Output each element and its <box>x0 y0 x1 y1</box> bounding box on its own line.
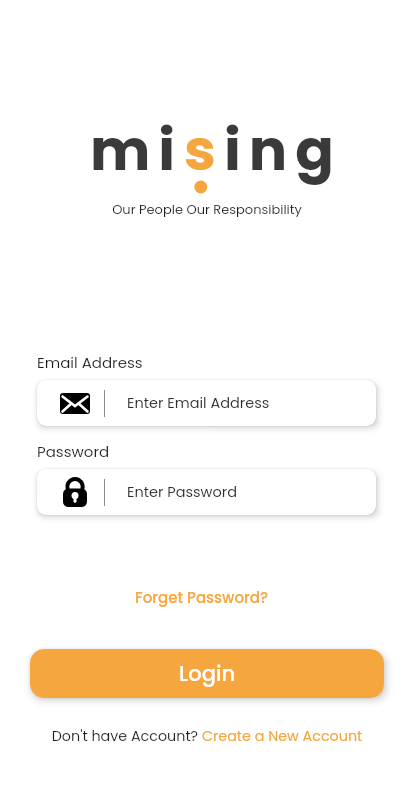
button[interactable]: Enter Password <box>37 469 376 515</box>
staticText: s <box>184 110 224 190</box>
staticText: ing <box>224 110 342 190</box>
staticText: Our People Our Responsibility <box>0 200 414 218</box>
button[interactable]: Don't have Account? Create a New Account <box>0 726 414 746</box>
staticText: Login <box>179 659 236 688</box>
staticText: Password <box>37 441 110 462</box>
staticText: Email Address <box>37 352 143 373</box>
button[interactable]: Enter Email Address <box>37 380 376 426</box>
button[interactable]: Login <box>30 649 384 698</box>
staticText: Enter Email Address <box>127 393 270 413</box>
staticText: mi <box>90 110 184 190</box>
staticText: Enter Password <box>127 482 237 502</box>
button[interactable]: Forget Password? <box>135 587 269 608</box>
